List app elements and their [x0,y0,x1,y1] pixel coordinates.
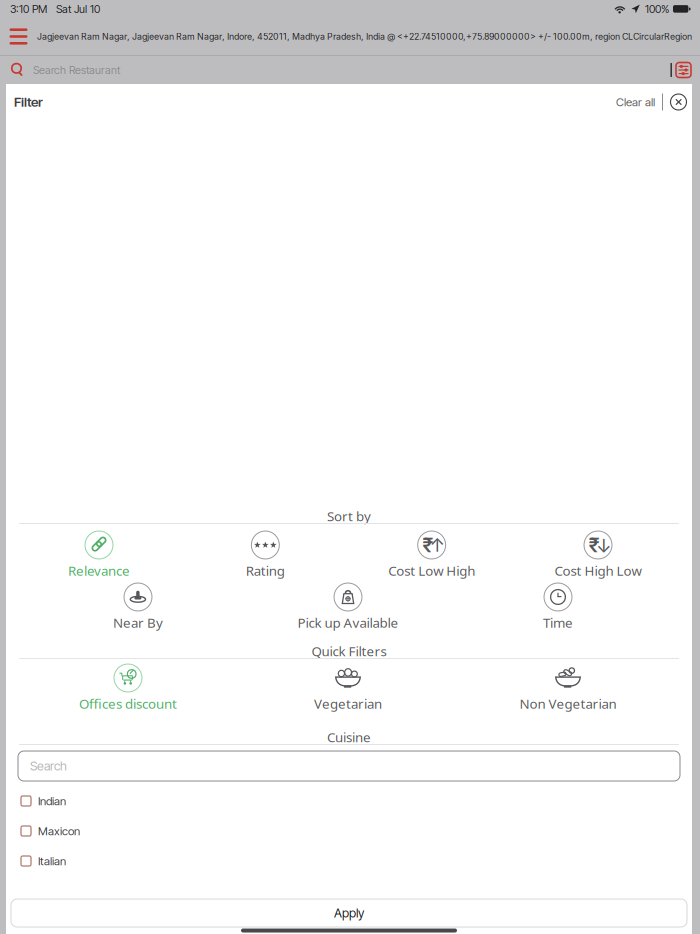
staticText: Pick up Available [297,614,398,631]
staticText: ₹ [588,533,599,557]
staticText: Non Vegetarian [519,695,616,712]
button[interactable]: Filter options [670,56,700,84]
button[interactable]: Menu [0,18,37,55]
staticText: ↓ [596,534,612,557]
staticText: Apply [334,905,364,921]
button[interactable]: Close [663,89,687,115]
button[interactable]: Vegetarian [293,664,403,712]
button[interactable]: Rating [220,531,310,579]
button[interactable]: Apply [11,899,687,927]
staticText: Time [543,614,573,631]
staticText: Maxicon [38,824,80,838]
staticText: Search Restaurant [33,63,120,77]
staticText: 100% [645,2,669,16]
staticText: Search [30,758,67,774]
staticText: Quick Filters [311,642,386,660]
button[interactable]: Non Vegetarian [513,664,623,712]
button[interactable]: Italian [6,846,692,876]
button[interactable]: Pick up Available [293,583,403,631]
button[interactable]: Near By [83,583,193,631]
button[interactable]: Search [18,751,680,781]
button[interactable]: ₹ [387,531,477,579]
staticText: Vegetarian [314,695,382,712]
staticText: Offices discount [79,695,177,712]
button[interactable]: Indian [6,786,692,816]
staticText: Cost Low High [388,562,475,579]
staticText: Relevance [68,562,130,579]
button[interactable]: ₹ [553,531,643,579]
staticText: ↑ [430,534,446,556]
staticText: Rating [246,562,285,579]
staticText: ₹ [422,533,433,557]
staticText: Clear all [616,95,655,109]
staticText: Sort by [327,507,371,525]
staticText: Cost High Low [554,562,641,579]
button[interactable]: Relevance [54,531,144,579]
staticText: 3:10 PM Sat Jul 10 [10,2,100,16]
button[interactable]: Offices discount [73,664,183,712]
staticText: Cuisine [327,728,371,746]
staticText: Filter [14,94,43,110]
button[interactable]: Maxicon [6,816,692,846]
staticText: Near By [113,614,163,631]
staticText: Jagjeevan Ram Nagar, Jagjeevan Ram Nagar… [37,31,692,42]
staticText: Italian [38,854,66,868]
staticText: Indian [38,794,66,808]
button[interactable]: Clear all [616,89,662,115]
button[interactable]: Search Restaurant [0,56,670,84]
button[interactable]: Time [503,583,613,631]
